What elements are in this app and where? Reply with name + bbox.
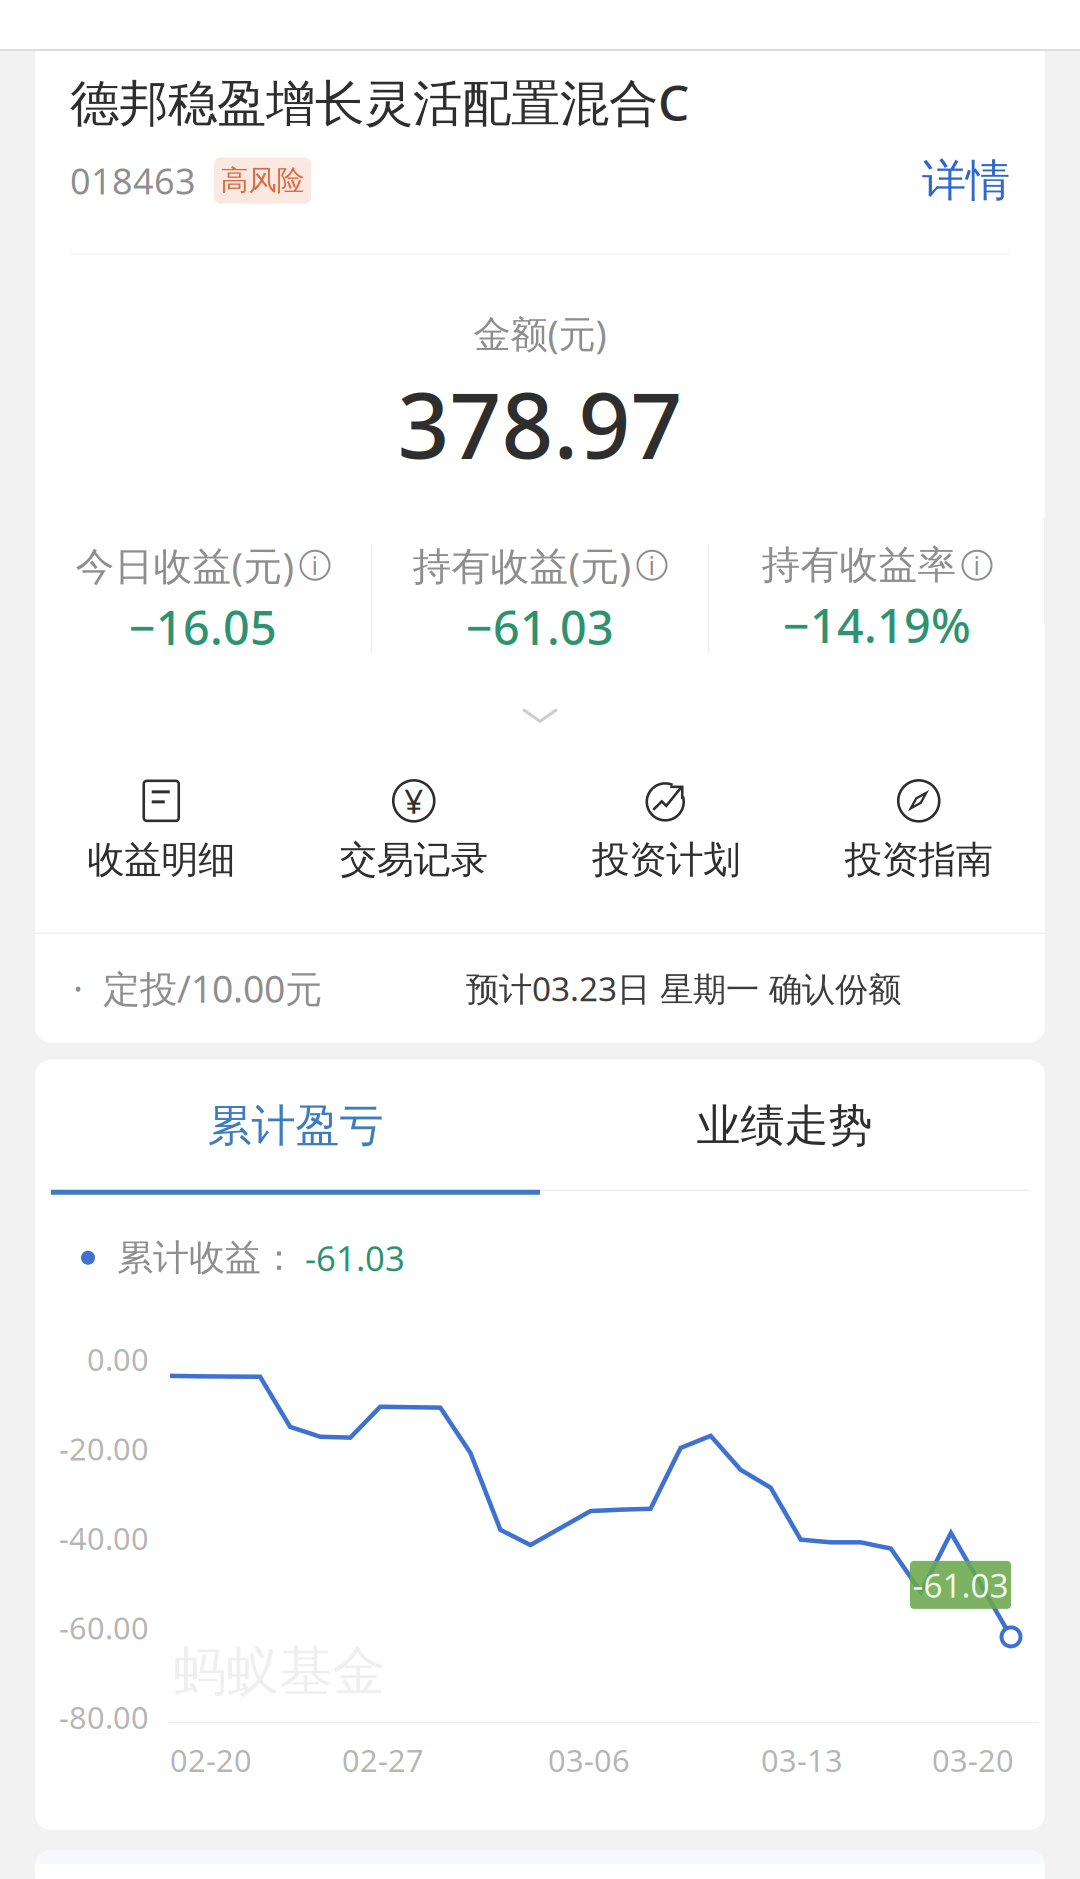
staticText: 蚂蚁基金 [173,1639,385,1704]
staticText: −14.19% [783,594,971,656]
staticText: 02-20 [170,1740,252,1780]
staticText: 378.97 [397,363,682,483]
staticText: 018463 [70,157,196,204]
staticText: · [73,963,83,1013]
staticText: 累计收益： [117,1236,297,1280]
staticText: 业绩走势 [696,1099,872,1153]
staticText: 投资指南 [845,837,993,883]
staticText: i [973,548,980,582]
button[interactable]: 业绩走势 [540,1060,1029,1195]
staticText: -61.03 [912,1563,1008,1607]
staticText: 0.00 [87,1339,149,1379]
button[interactable]: 收益明细 [35,779,287,883]
staticText: 持有收益(元) [412,539,631,591]
staticText: -80.00 [59,1697,149,1737]
staticText: -60.00 [59,1607,149,1648]
staticText: ¥ [404,779,423,823]
staticText: 投资计划 [592,837,740,883]
staticText: i [311,548,318,582]
staticText: i [648,548,655,582]
staticText: 金额(元) [473,309,606,358]
staticText: 03-20 [932,1740,1014,1780]
button[interactable]: ¥ [287,779,540,883]
button[interactable]: 累计盈亏 [51,1060,540,1195]
staticText: 详情 [922,153,1010,207]
staticText: −61.03 [466,596,614,658]
staticText: 收益明细 [87,837,235,883]
staticText: -20.00 [59,1428,149,1469]
staticText: −16.05 [129,596,277,658]
staticText: 德邦稳盈增长灵活配置混合C [70,69,689,134]
staticText: -61.03 [305,1235,405,1281]
button[interactable]: 投资指南 [792,779,1045,883]
staticText: 03-06 [548,1740,630,1780]
staticText: 预计03.23日 星期一 确认份额 [466,966,901,1010]
staticText: -40.00 [59,1518,149,1558]
staticText: 累计盈亏 [207,1099,383,1153]
staticText: 持有收益率 [761,541,956,589]
staticText: 今日收益(元) [75,539,294,591]
button[interactable]: 投资计划 [540,779,792,883]
staticText: 02-27 [342,1740,424,1780]
staticText: 03-13 [761,1740,843,1780]
staticText: 定投/10.00元 [103,963,322,1013]
staticText: 交易记录 [340,837,488,883]
staticText: 高风险 [220,163,304,198]
button[interactable]: 详情 [922,153,1010,207]
